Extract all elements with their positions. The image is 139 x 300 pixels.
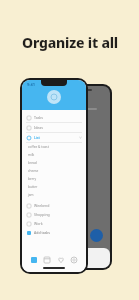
staticText: bread <box>28 161 37 165</box>
button[interactable]: bread <box>22 159 86 167</box>
button[interactable]: List <box>22 133 86 142</box>
button[interactable]: Tasks <box>22 113 86 122</box>
staticText: List <box>34 135 40 140</box>
staticText: butter <box>28 185 38 189</box>
staticText: Shopping <box>34 212 50 217</box>
button[interactable]: Weekend <box>22 201 86 210</box>
button[interactable]: Profile <box>47 90 61 104</box>
staticText: coffee & toast <box>28 145 49 149</box>
button[interactable]: Favorites <box>56 255 66 265</box>
staticText: milk <box>28 153 35 157</box>
button[interactable]: milk <box>22 151 86 159</box>
button[interactable]: Add <box>90 229 103 242</box>
button[interactable]: Lists <box>29 255 39 265</box>
button[interactable]: Work <box>22 219 86 228</box>
staticText: berry <box>28 177 37 181</box>
staticText: Add tasks <box>34 230 50 235</box>
button[interactable]: cheese <box>22 167 86 175</box>
staticText: Weekend <box>34 203 50 208</box>
staticText: 9:41 <box>27 82 35 87</box>
staticText: Organize it all <box>22 33 118 52</box>
button[interactable]: Calendar <box>42 255 52 265</box>
staticText: Work <box>34 221 43 226</box>
button[interactable]: butter <box>22 183 86 191</box>
button[interactable]: coffee & toast <box>22 143 86 151</box>
staticText: Ideas <box>34 125 43 130</box>
button[interactable]: berry <box>22 175 86 183</box>
button[interactable]: Shopping <box>22 210 86 219</box>
button[interactable]: Add tasks <box>22 228 86 237</box>
button[interactable]: jam <box>22 191 86 199</box>
button[interactable]: Settings <box>69 255 79 265</box>
staticText: Tasks <box>34 115 43 120</box>
button[interactable]: Ideas <box>22 123 86 132</box>
staticText: jam <box>28 193 34 197</box>
staticText: cheese <box>28 169 39 173</box>
